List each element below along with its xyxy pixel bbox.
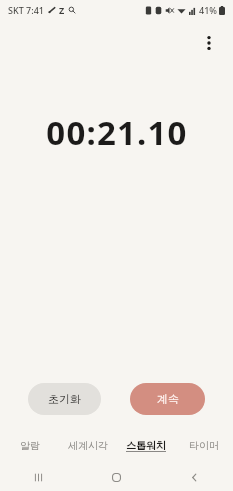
staticText: 알람 <box>20 439 40 452</box>
button[interactable]: Recent apps <box>0 463 77 491</box>
staticText: 스톱워치 <box>126 439 166 452</box>
staticText: 타이머 <box>189 439 219 452</box>
button[interactable]: 세계시각 <box>59 433 117 457</box>
staticText: 00:21.10 <box>46 110 188 155</box>
staticText: Z <box>59 4 65 16</box>
staticText: 41% <box>199 4 217 16</box>
button[interactable]: Home <box>77 463 155 491</box>
button[interactable]: 스톱워치 <box>117 433 175 457</box>
button[interactable]: More options <box>193 27 225 59</box>
button[interactable]: 계속 <box>130 383 205 415</box>
button[interactable]: 알람 <box>0 433 59 457</box>
button[interactable]: Back <box>155 463 233 491</box>
button[interactable]: 타이머 <box>175 433 233 457</box>
staticText: 계속 <box>157 392 179 406</box>
staticText: 세계시각 <box>68 439 108 452</box>
button[interactable]: 초기화 <box>28 383 101 415</box>
staticText: 초기화 <box>48 392 81 406</box>
staticText: SKT 7:41 <box>8 4 44 16</box>
